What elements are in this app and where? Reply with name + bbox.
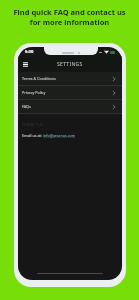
button[interactable]: Privacy Policy — [18, 86, 122, 99]
staticText: FAQs — [22, 104, 31, 109]
button[interactable]: Email us at: — [22, 133, 122, 138]
staticText: CONTACT US — [22, 122, 43, 127]
staticText: Email us at: — [22, 133, 43, 138]
staticText: 6:30 — [25, 49, 34, 55]
staticText: info@arcanus.com — [43, 133, 76, 138]
button[interactable]: Menu — [20, 59, 30, 69]
staticText: Find quick FAQ and contact us for more i… — [13, 7, 126, 27]
button[interactable]: Terms & Conditions — [18, 72, 122, 85]
button[interactable]: FAQs — [18, 100, 122, 113]
staticText: SETTINGS — [57, 61, 83, 68]
staticText: Privacy Policy — [22, 90, 46, 95]
staticText: Terms & Conditions — [22, 76, 56, 81]
